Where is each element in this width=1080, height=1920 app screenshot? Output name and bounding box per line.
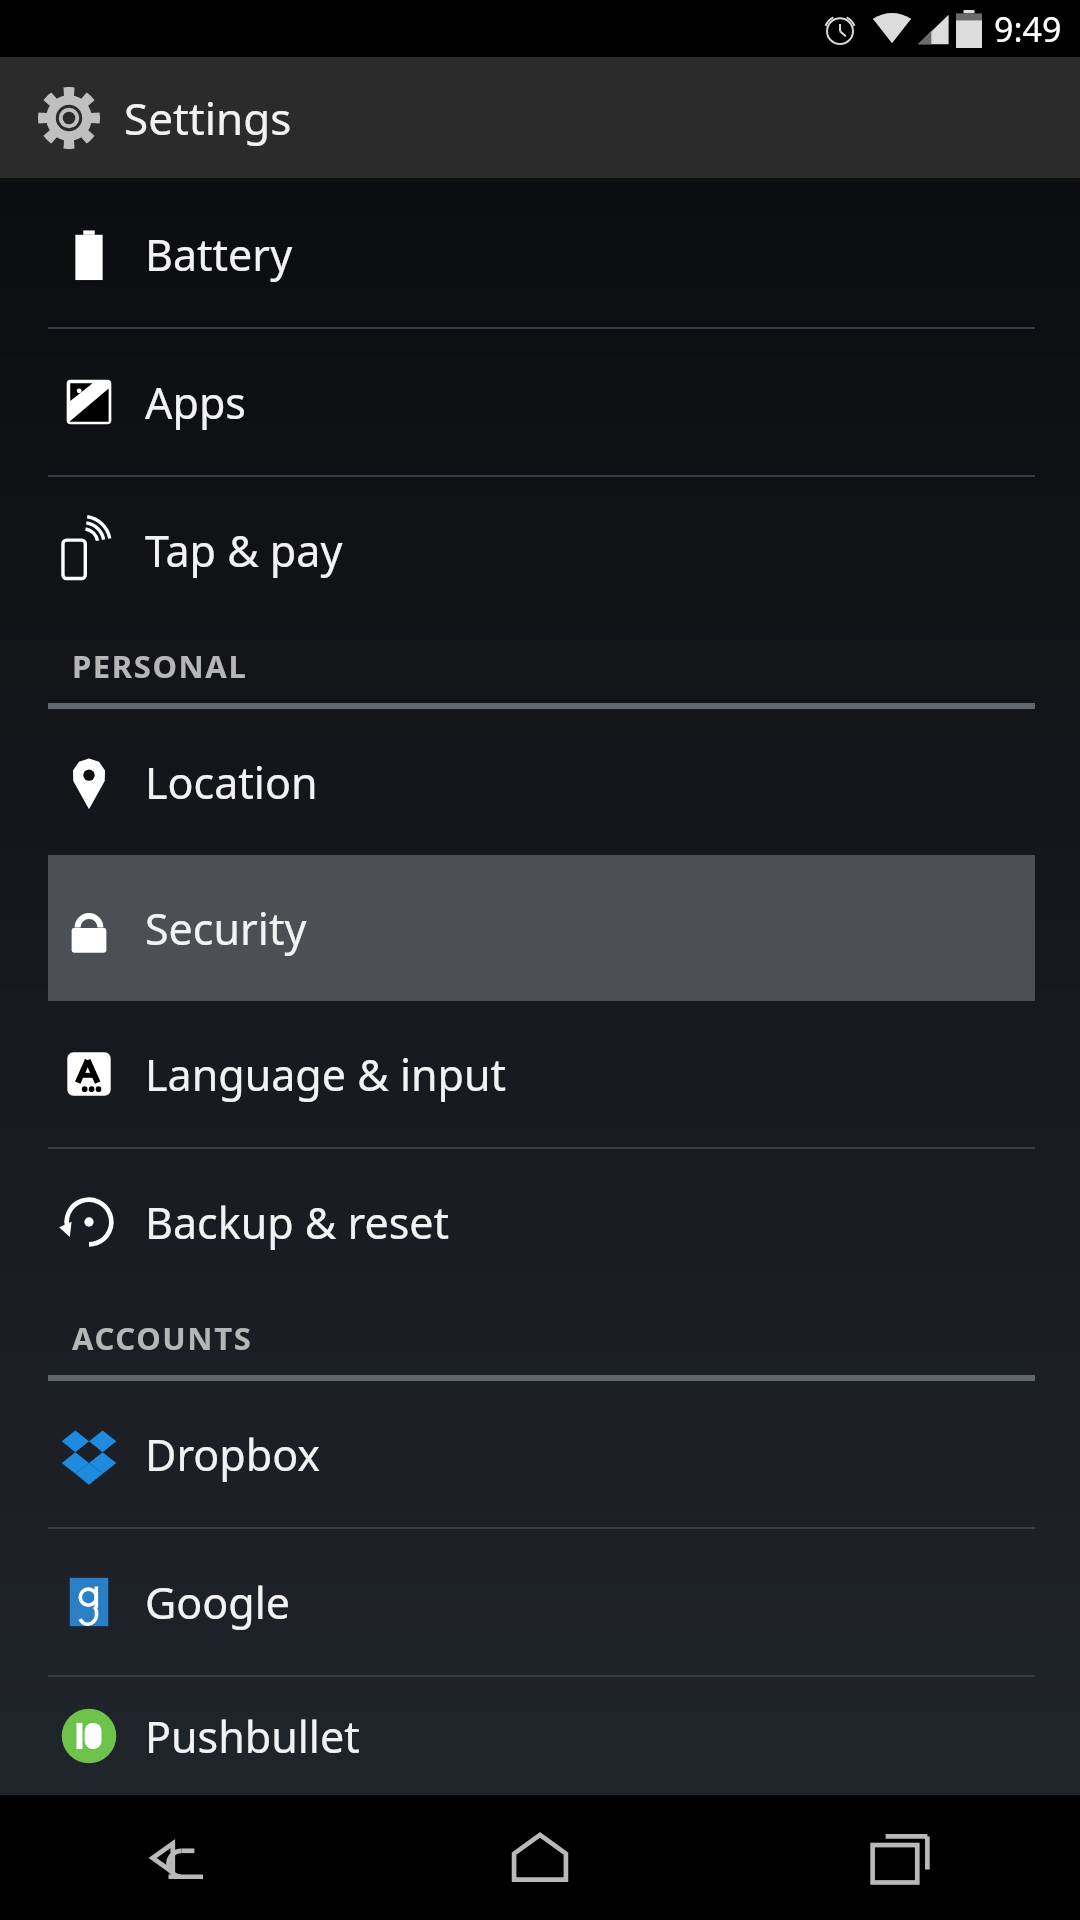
- staticText: Google: [145, 1573, 291, 1632]
- button[interactable]: Tap & pay: [0, 477, 1080, 623]
- button[interactable]: Backup & reset: [0, 1149, 1080, 1295]
- staticText: Apps: [145, 373, 246, 432]
- button[interactable]: Home: [360, 1795, 720, 1920]
- staticText: Backup & reset: [145, 1193, 450, 1252]
- staticText: Settings: [124, 88, 292, 148]
- staticText: Security: [145, 899, 307, 958]
- staticText: Pushbullet: [145, 1707, 360, 1766]
- staticText: Tap & pay: [145, 521, 343, 580]
- staticText: Language & input: [145, 1045, 507, 1104]
- staticText: Battery: [145, 225, 293, 284]
- button[interactable]: Language & input: [0, 1001, 1080, 1147]
- staticText: ACCOUNTS: [72, 1317, 253, 1359]
- button[interactable]: Settings: [0, 57, 1080, 178]
- staticText: Location: [145, 753, 318, 812]
- staticText: Dropbox: [145, 1425, 321, 1484]
- button[interactable]: Security: [48, 855, 1035, 1001]
- staticText: PERSONAL: [72, 645, 248, 687]
- staticText: 9:49: [994, 6, 1062, 52]
- button[interactable]: Dropbox: [0, 1381, 1080, 1527]
- button[interactable]: Battery: [0, 181, 1080, 327]
- button[interactable]: Recent apps: [720, 1795, 1080, 1920]
- button[interactable]: Location: [0, 709, 1080, 855]
- button[interactable]: Google: [0, 1529, 1080, 1675]
- button[interactable]: Pushbullet: [0, 1677, 1080, 1795]
- button[interactable]: Apps: [0, 329, 1080, 475]
- button[interactable]: Back: [0, 1795, 360, 1920]
